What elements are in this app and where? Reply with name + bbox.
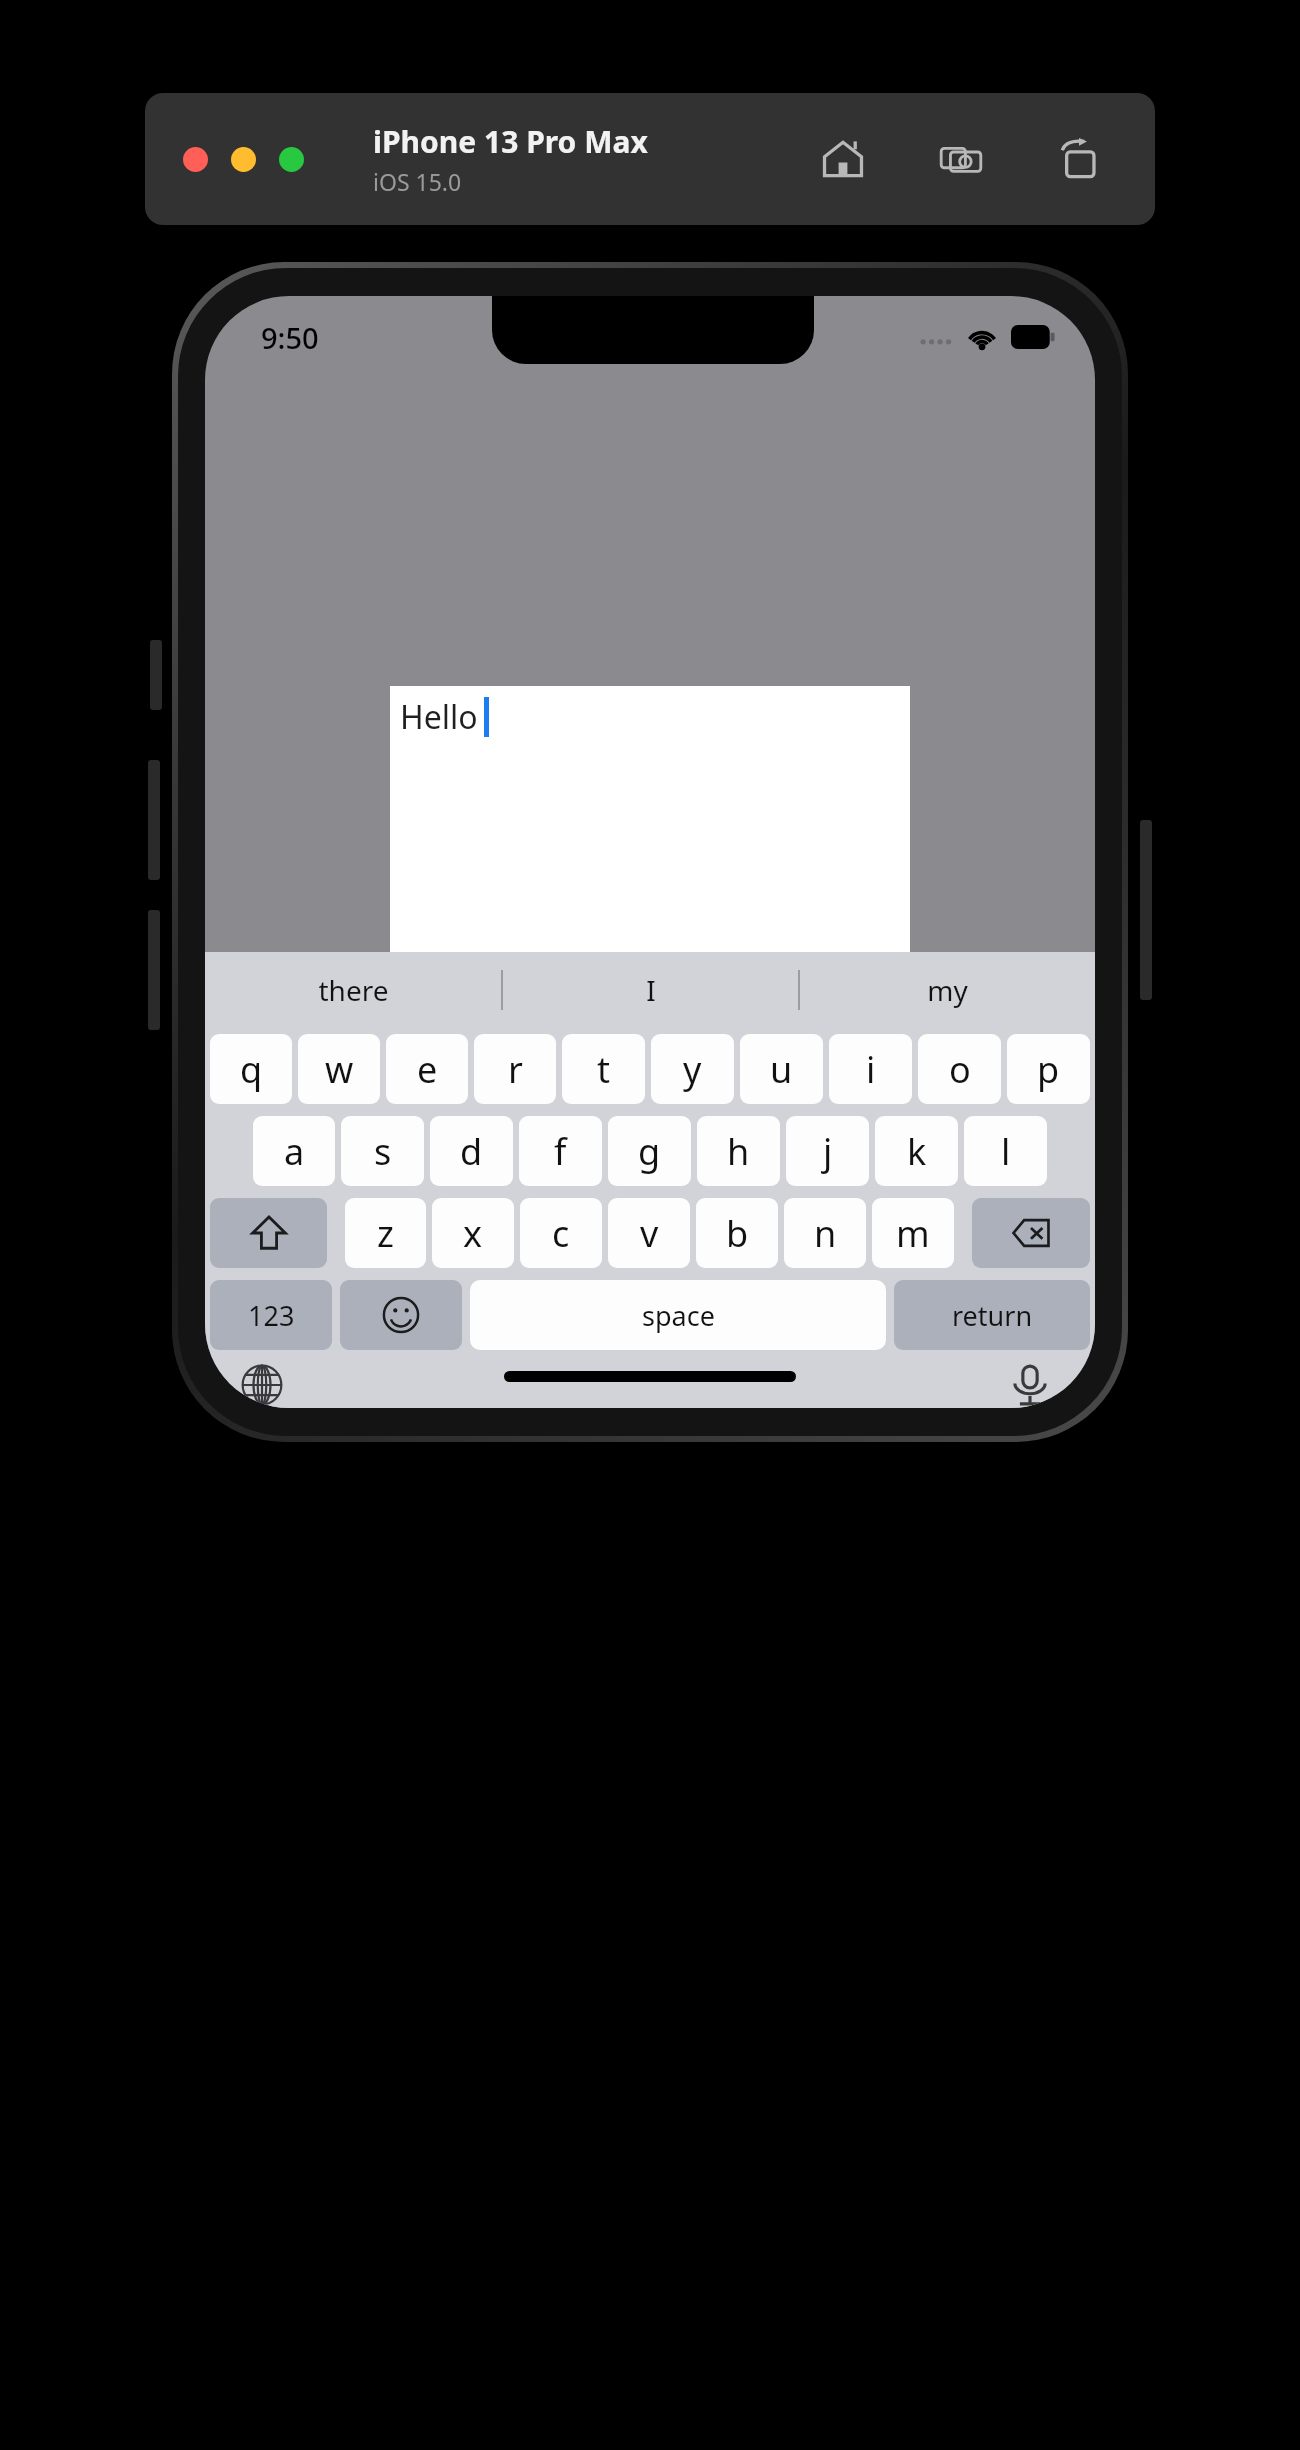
button[interactable]: o xyxy=(918,1034,1001,1104)
staticText: a xyxy=(284,1127,305,1176)
button[interactable]: Change keyboard xyxy=(233,1362,291,1408)
staticText: m xyxy=(896,1209,930,1258)
staticText: p xyxy=(1037,1045,1060,1094)
button[interactable]: g xyxy=(608,1116,691,1186)
staticText: l xyxy=(1001,1127,1011,1176)
staticText: v xyxy=(640,1209,659,1258)
button[interactable]: Backspace xyxy=(972,1198,1090,1268)
button[interactable]: Shift xyxy=(210,1198,327,1268)
button[interactable]: z xyxy=(345,1198,426,1268)
staticText: k xyxy=(907,1127,927,1176)
button[interactable]: a xyxy=(253,1116,335,1186)
staticText: Hello xyxy=(400,695,478,739)
button[interactable]: Emoji xyxy=(340,1280,462,1350)
button[interactable]: p xyxy=(1007,1034,1090,1104)
staticText: o xyxy=(949,1045,971,1094)
button[interactable]: Minimise xyxy=(231,147,256,172)
staticText: I xyxy=(646,971,656,1009)
button[interactable]: s xyxy=(341,1116,424,1186)
button[interactable]: Rotate xyxy=(1051,131,1107,187)
button[interactable]: k xyxy=(875,1116,958,1186)
button[interactable]: b xyxy=(696,1198,778,1268)
staticText: e xyxy=(417,1045,438,1094)
staticText: i xyxy=(866,1045,876,1094)
staticText: 9:50 xyxy=(261,318,319,357)
button[interactable]: v xyxy=(608,1198,690,1268)
button[interactable]: i xyxy=(829,1034,912,1104)
button[interactable]: 123 xyxy=(210,1280,332,1350)
button[interactable]: q xyxy=(210,1034,292,1104)
button[interactable]: Zoom xyxy=(279,147,304,172)
button[interactable]: I xyxy=(503,952,798,1028)
button[interactable]: u xyxy=(740,1034,823,1104)
staticText: h xyxy=(727,1127,750,1176)
button[interactable]: d xyxy=(430,1116,513,1186)
button[interactable]: m xyxy=(872,1198,954,1268)
staticText: f xyxy=(554,1127,567,1176)
button[interactable]: Hello xyxy=(390,686,910,1206)
button[interactable]: Dictate xyxy=(1001,1362,1059,1408)
staticText: r xyxy=(508,1045,523,1094)
button[interactable]: Screenshot xyxy=(933,131,989,187)
staticText: 123 xyxy=(248,1297,295,1334)
button[interactable]: my xyxy=(800,952,1095,1028)
button[interactable]: there xyxy=(205,952,501,1028)
button[interactable]: Home xyxy=(815,131,871,187)
staticText: there xyxy=(318,971,389,1009)
staticText: iPhone 13 Pro Max xyxy=(373,121,648,162)
staticText: q xyxy=(240,1045,263,1094)
button[interactable]: c xyxy=(520,1198,602,1268)
button[interactable]: e xyxy=(386,1034,468,1104)
button[interactable]: h xyxy=(697,1116,780,1186)
button[interactable]: y xyxy=(651,1034,734,1104)
button[interactable]: t xyxy=(562,1034,645,1104)
staticText: my xyxy=(927,971,968,1009)
staticText: space xyxy=(642,1297,715,1334)
staticText: u xyxy=(770,1045,793,1094)
button[interactable]: j xyxy=(786,1116,869,1186)
button[interactable]: f xyxy=(519,1116,602,1186)
staticText: t xyxy=(597,1045,610,1094)
button[interactable]: w xyxy=(298,1034,380,1104)
staticText: j xyxy=(823,1127,833,1176)
staticText: iOS 15.0 xyxy=(373,166,462,197)
staticText: b xyxy=(726,1209,749,1258)
staticText: n xyxy=(814,1209,837,1258)
staticText: w xyxy=(325,1045,354,1094)
staticText: y xyxy=(683,1045,702,1094)
staticText: return xyxy=(952,1297,1033,1334)
staticText: s xyxy=(374,1127,392,1176)
staticText: z xyxy=(377,1209,394,1258)
button[interactable]: return xyxy=(894,1280,1090,1350)
staticText: g xyxy=(638,1127,661,1176)
staticText: c xyxy=(552,1209,570,1258)
button[interactable]: r xyxy=(474,1034,556,1104)
button[interactable]: x xyxy=(432,1198,514,1268)
staticText: d xyxy=(460,1127,483,1176)
staticText: x xyxy=(463,1209,483,1258)
button[interactable]: space xyxy=(470,1280,886,1350)
button[interactable]: Close xyxy=(183,147,208,172)
button[interactable]: n xyxy=(784,1198,866,1268)
button[interactable]: l xyxy=(964,1116,1047,1186)
